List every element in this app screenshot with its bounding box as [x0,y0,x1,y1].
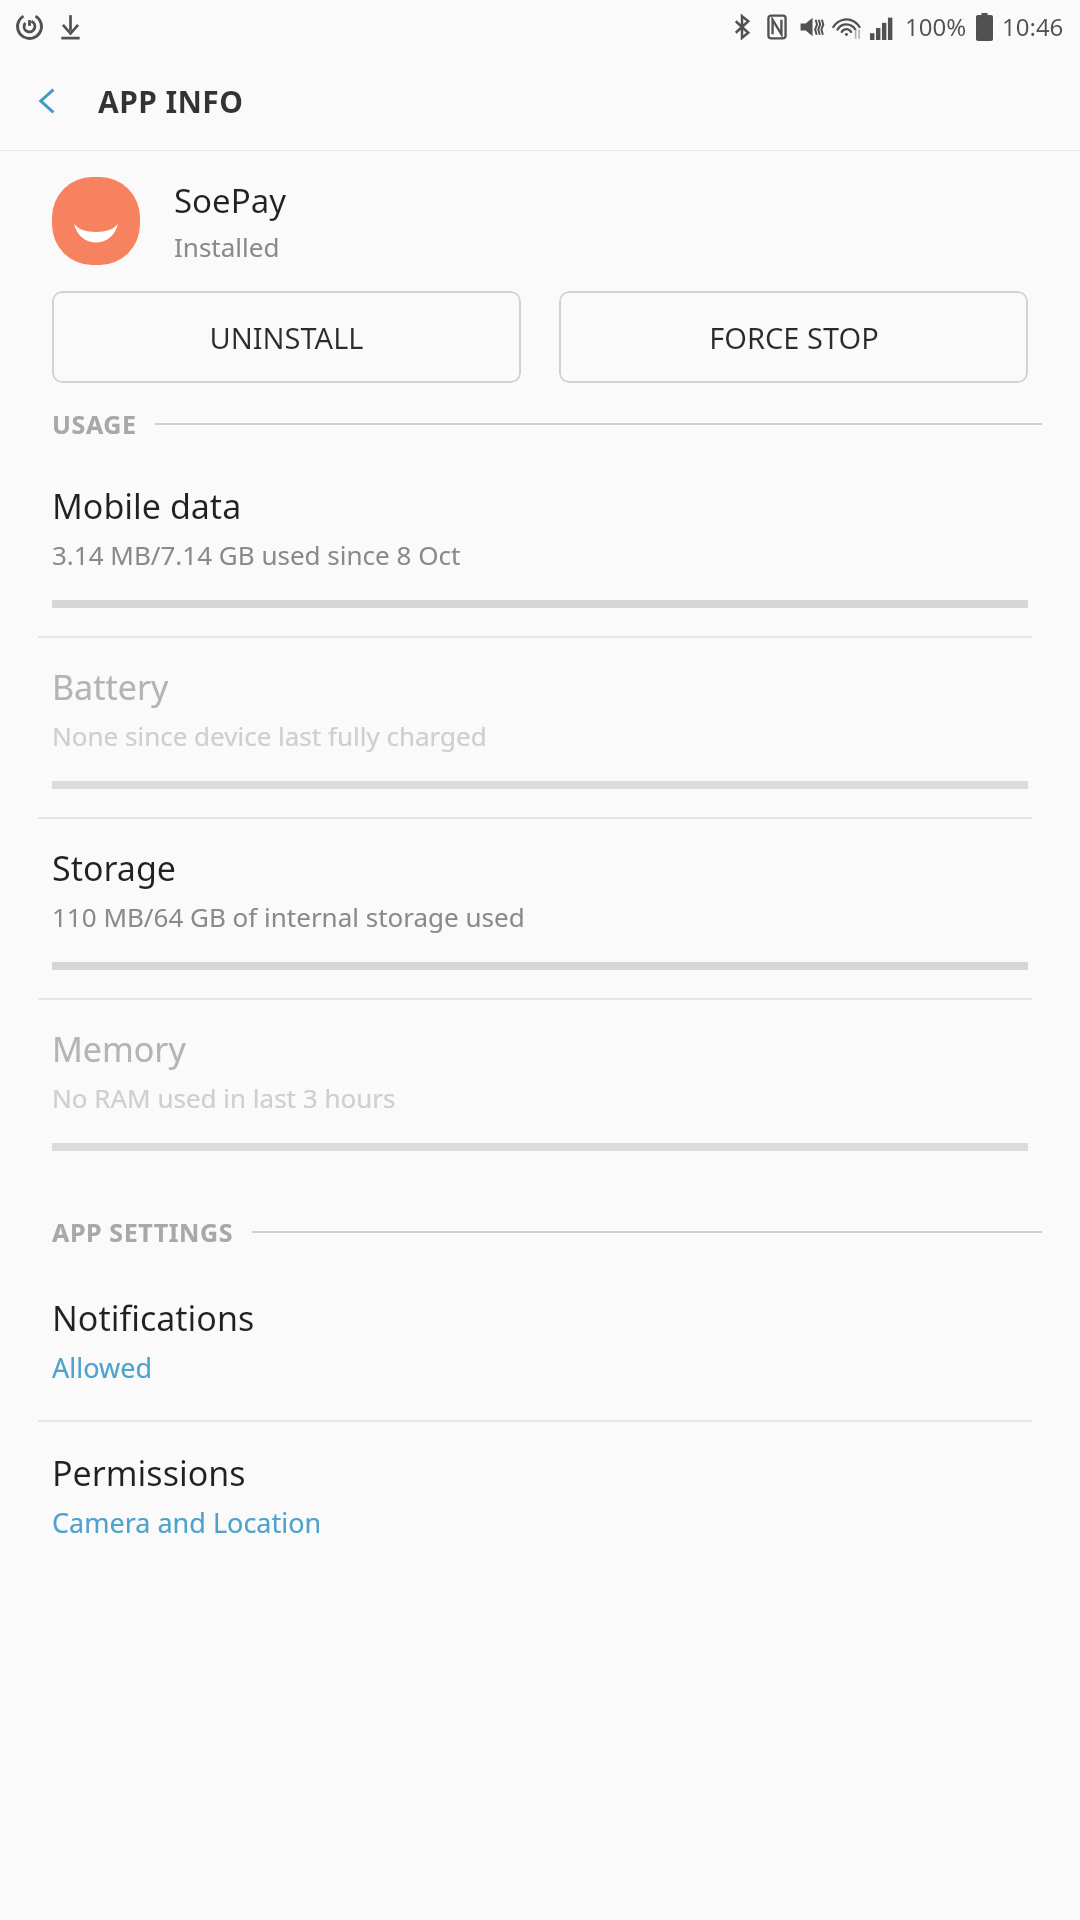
staticText: Allowed [52,1349,153,1386]
staticText: 10:46 [1002,10,1064,43]
staticText: None since device last fully charged [52,718,487,753]
staticText: Storage [52,845,177,891]
staticText: Installed [174,229,280,264]
staticText: USAGE [52,407,137,441]
staticText: Mobile data [52,483,242,529]
staticText: APP INFO [98,81,244,122]
button[interactable]: SoePay [0,151,1080,291]
button[interactable]: Back [20,73,76,129]
button[interactable]: Battery [0,638,1080,819]
staticText: 110 MB/64 GB of internal storage used [52,899,525,934]
button[interactable]: Permissions [0,1422,1080,1575]
button[interactable]: Mobile data [0,457,1080,638]
staticText: APP SETTINGS [52,1215,234,1249]
button[interactable]: FORCE STOP [559,291,1028,383]
staticText: Permissions [52,1450,246,1496]
staticText: Camera and Location [52,1504,322,1541]
staticText: No RAM used in last 3 hours [52,1080,396,1115]
staticText: 100% [905,10,967,43]
button[interactable]: Memory [0,1000,1080,1179]
staticText: SoePay [174,178,287,223]
button[interactable]: Storage [0,819,1080,1000]
staticText: Memory [52,1026,186,1072]
staticText: Battery [52,664,169,710]
staticText: UNINSTALL [209,318,364,357]
staticText: FORCE STOP [709,318,879,357]
staticText: Notifications [52,1295,255,1341]
button[interactable]: Notifications [0,1267,1080,1422]
staticText: 3.14 MB/7.14 GB used since 8 Oct [52,537,461,572]
button[interactable]: UNINSTALL [52,291,521,383]
